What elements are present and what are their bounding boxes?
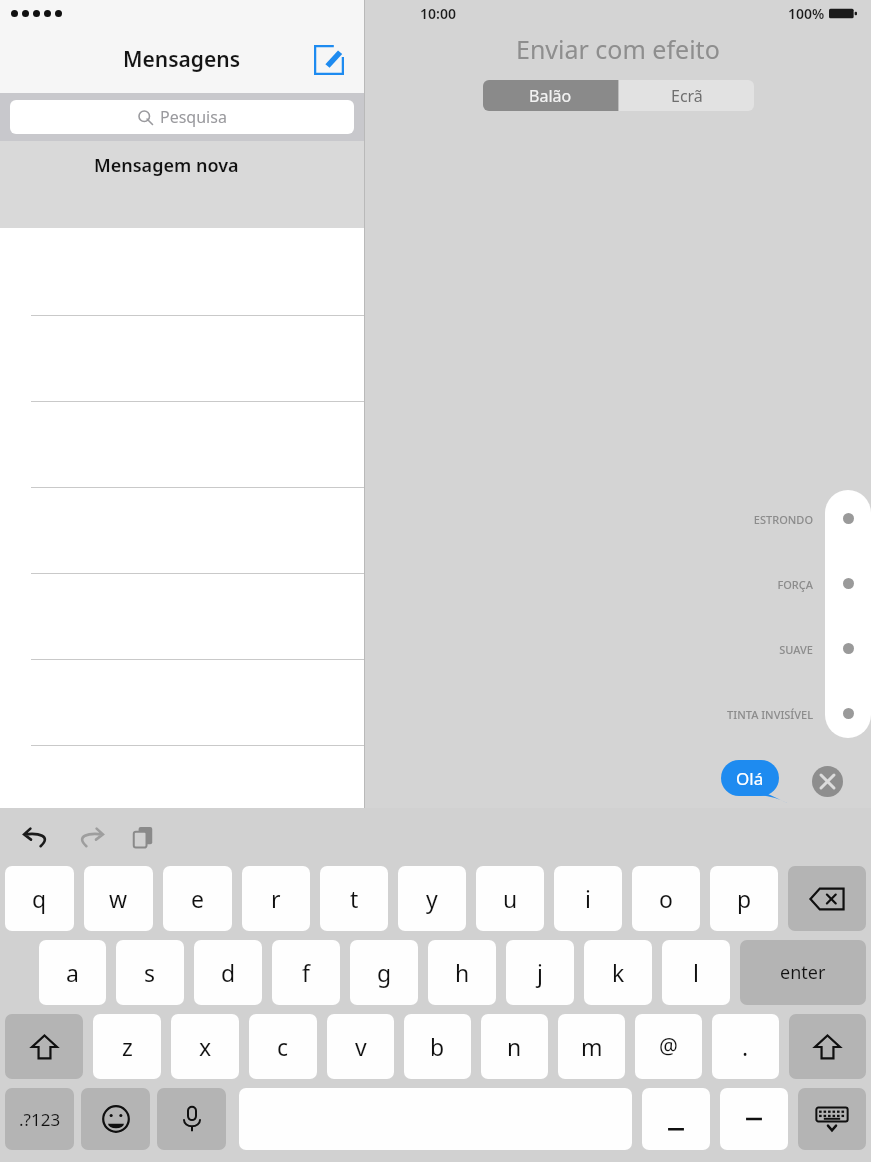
staticText: @ <box>659 1032 678 1061</box>
button[interactable]: q <box>5 866 74 931</box>
button[interactable]: Ecrã <box>619 80 754 111</box>
button[interactable]: l <box>662 940 730 1005</box>
button[interactable]: Ocultar teclado <box>798 1088 866 1150</box>
staticText: c <box>277 1031 289 1062</box>
button[interactable]: Ditado <box>157 1088 226 1150</box>
button[interactable]: Hífen <box>720 1088 788 1150</box>
staticText: . <box>742 1031 749 1062</box>
staticText: x <box>199 1031 212 1062</box>
staticText: Ecrã <box>671 85 703 107</box>
button[interactable]: . <box>712 1014 779 1079</box>
staticText: k <box>612 957 625 988</box>
button[interactable]: w <box>84 866 153 931</box>
button[interactable]: x <box>171 1014 239 1079</box>
staticText: Balão <box>529 85 572 107</box>
staticText: TINTA INVISÍVEL <box>727 707 813 722</box>
button[interactable]: o <box>632 866 700 931</box>
button[interactable] <box>825 643 871 708</box>
button[interactable]: ESTRONDO <box>753 512 813 577</box>
button[interactable]: y <box>398 866 466 931</box>
staticText: e <box>191 883 204 914</box>
button[interactable]: Mensagem nova <box>0 141 364 228</box>
button[interactable]: Anular <box>14 814 60 860</box>
button[interactable]: z <box>93 1014 161 1079</box>
button[interactable]: FORÇA <box>777 577 813 642</box>
staticText: r <box>271 883 281 914</box>
staticText: g <box>377 957 392 988</box>
button[interactable]: .?123 <box>5 1088 74 1150</box>
staticText: f <box>302 957 310 988</box>
button[interactable]: t <box>320 866 388 931</box>
staticText: Mensagens <box>123 45 241 74</box>
staticText: a <box>66 957 79 988</box>
button[interactable]: g <box>350 940 418 1005</box>
button[interactable]: Underscore <box>642 1088 710 1150</box>
button[interactable]: u <box>476 866 544 931</box>
button[interactable]: f <box>272 940 340 1005</box>
button[interactable]: e <box>163 866 232 931</box>
button[interactable] <box>825 708 871 728</box>
staticText: Olá <box>736 767 764 790</box>
button[interactable]: p <box>710 866 778 931</box>
staticText: m <box>581 1031 603 1062</box>
button[interactable] <box>825 578 871 643</box>
staticText: j <box>537 957 543 988</box>
button[interactable]: Colar <box>120 814 166 860</box>
button[interactable]: @ <box>635 1014 702 1079</box>
button[interactable]: v <box>327 1014 394 1079</box>
staticText: o <box>659 883 673 914</box>
button[interactable]: TINTA INVISÍVEL <box>727 707 813 729</box>
staticText: ESTRONDO <box>753 512 813 527</box>
button[interactable]: Shift <box>789 1014 866 1079</box>
button[interactable]: c <box>249 1014 317 1079</box>
staticText: q <box>32 883 47 914</box>
staticText: p <box>737 883 752 914</box>
button[interactable]: enter <box>740 940 866 1005</box>
button[interactable]: m <box>558 1014 625 1079</box>
staticText: y <box>426 883 438 914</box>
staticText: s <box>144 957 156 988</box>
staticText: enter <box>780 960 826 985</box>
staticText: .?123 <box>19 1108 61 1131</box>
button[interactable]: Emoji <box>81 1088 150 1150</box>
button[interactable]: d <box>194 940 262 1005</box>
staticText: SUAVE <box>779 642 813 657</box>
staticText: n <box>507 1031 522 1062</box>
staticText: Pesquisa <box>160 106 227 128</box>
button[interactable] <box>825 513 871 578</box>
staticText: w <box>109 883 128 914</box>
staticText: 100% <box>788 4 825 23</box>
button[interactable]: i <box>554 866 622 931</box>
button[interactable]: Retrocesso <box>788 866 866 931</box>
button[interactable]: b <box>404 1014 471 1079</box>
staticText: i <box>585 883 591 914</box>
button[interactable]: a <box>39 940 106 1005</box>
staticText: d <box>221 957 236 988</box>
button[interactable]: s <box>116 940 184 1005</box>
button[interactable]: Pesquisa <box>10 100 354 134</box>
staticText: v <box>355 1031 367 1062</box>
button[interactable]: r <box>242 866 310 931</box>
button[interactable]: Refazer <box>67 814 113 860</box>
button[interactable]: Mensagem nova <box>312 43 346 77</box>
button[interactable]: Balão <box>483 80 618 111</box>
staticText: z <box>122 1031 133 1062</box>
staticText: b <box>430 1031 445 1062</box>
staticText: Mensagem nova <box>94 153 239 178</box>
button[interactable]: k <box>584 940 652 1005</box>
button[interactable]: n <box>481 1014 548 1079</box>
button[interactable]: j <box>506 940 574 1005</box>
button[interactable]: Shift <box>5 1014 83 1079</box>
staticText: Enviar com efeito <box>516 32 720 66</box>
button[interactable]: Cancelar <box>812 766 843 797</box>
button[interactable]: h <box>428 940 496 1005</box>
staticText: l <box>693 957 699 988</box>
button[interactable]: SUAVE <box>779 642 813 707</box>
staticText: t <box>350 883 359 914</box>
staticText: 10:00 <box>420 4 456 23</box>
staticText: u <box>503 883 518 914</box>
staticText: FORÇA <box>777 577 813 592</box>
staticText: h <box>455 957 470 988</box>
